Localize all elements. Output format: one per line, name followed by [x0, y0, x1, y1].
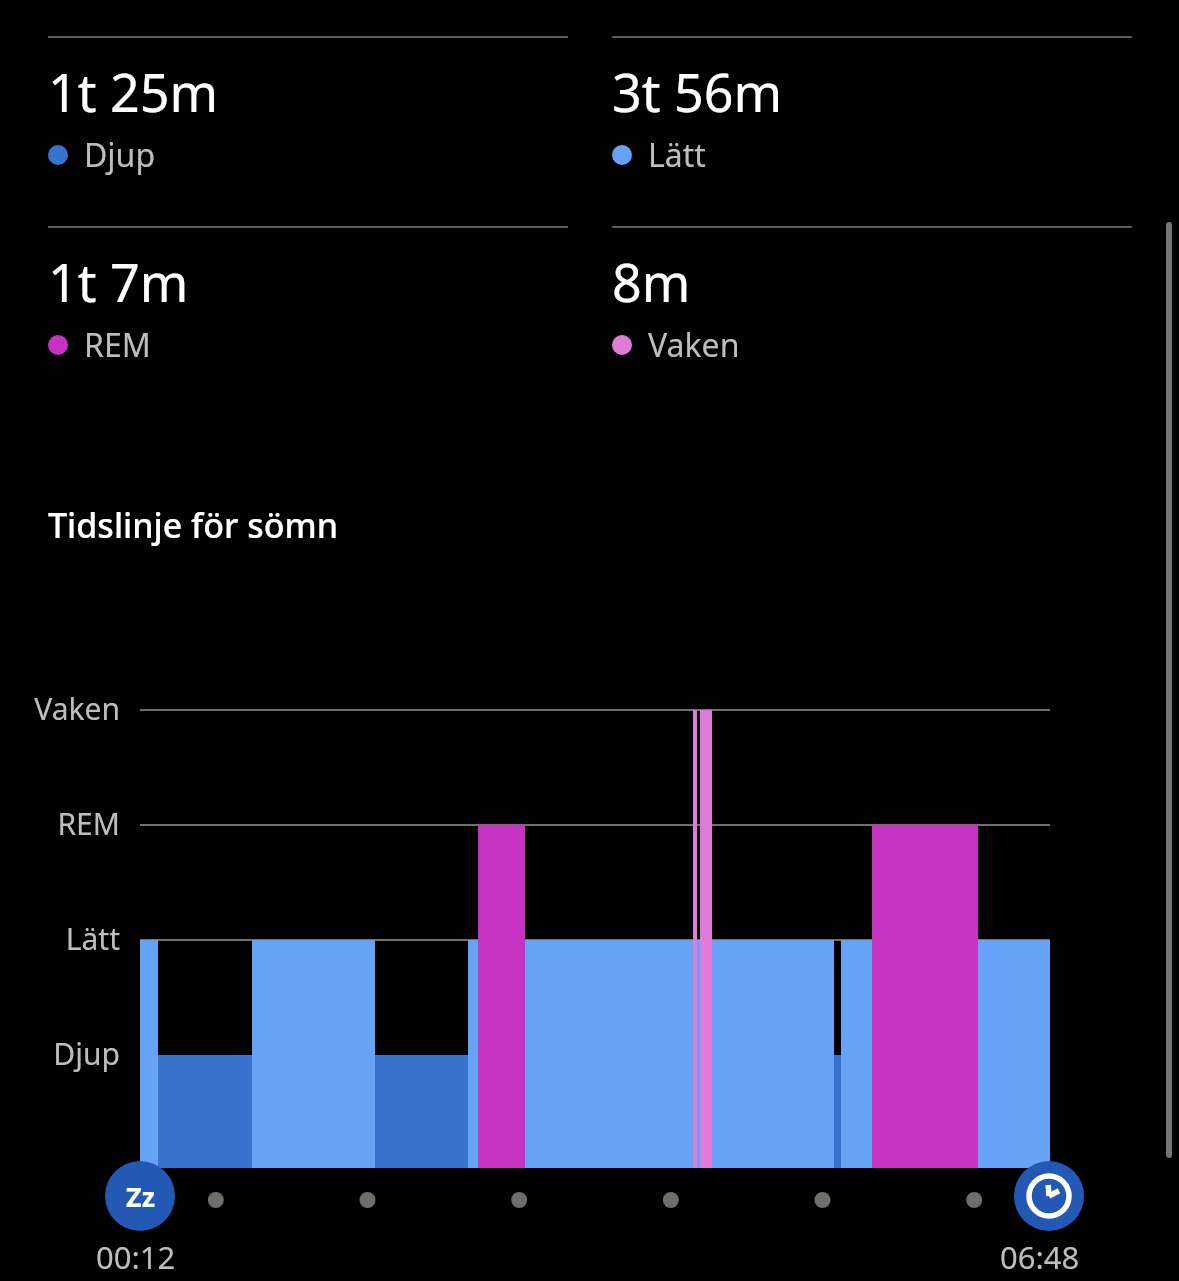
staticText: Lätt — [0, 918, 120, 959]
staticText: 1t 25m — [48, 56, 219, 127]
staticText: 3t 56m — [612, 56, 783, 127]
staticText: Zz — [126, 1178, 155, 1215]
staticText: Vaken — [0, 688, 120, 729]
staticText: Djup — [0, 1033, 120, 1074]
staticText: 1t 7m — [48, 246, 189, 317]
staticText: 00:12 — [96, 1236, 176, 1278]
staticText: Djup — [84, 133, 156, 177]
button[interactable]: 3t 56m — [612, 36, 1132, 177]
staticText: Lätt — [648, 133, 706, 177]
staticText: REM — [84, 323, 151, 367]
button[interactable]: 8m — [612, 226, 1132, 367]
staticText: Vaken — [648, 323, 740, 367]
button[interactable]: 1t 7m — [48, 226, 568, 367]
staticText: 06:48 — [1000, 1236, 1080, 1278]
button[interactable]: Sleep start time — [105, 1161, 175, 1231]
staticText: REM — [0, 803, 120, 844]
staticText: 8m — [612, 246, 691, 317]
button[interactable]: 1t 25m — [48, 36, 568, 177]
staticText: Tidslinje för sömn — [48, 502, 339, 548]
button[interactable]: Wake up time — [1014, 1161, 1084, 1231]
